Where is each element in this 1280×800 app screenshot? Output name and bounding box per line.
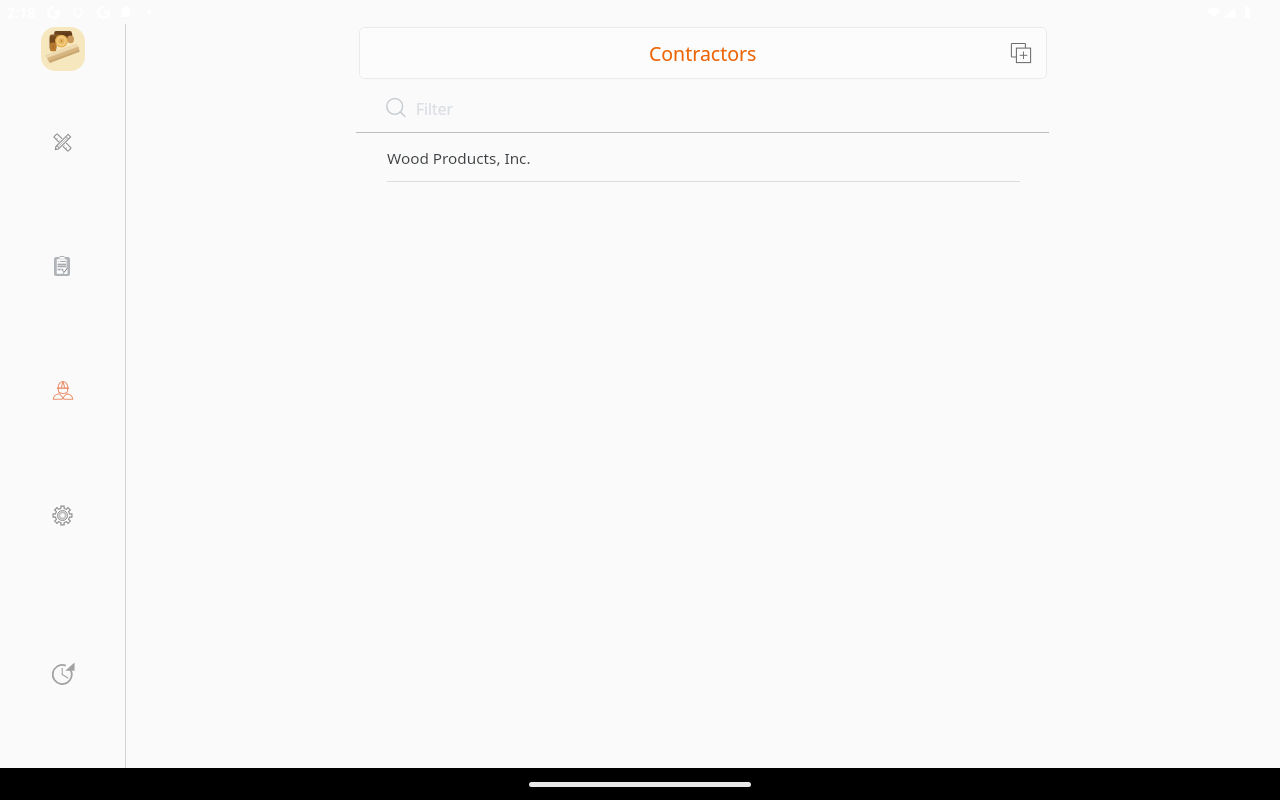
- button[interactable]: App logo: [41, 27, 85, 71]
- staticText: Wood Products, Inc.: [387, 148, 531, 169]
- button[interactable]: Settings: [38, 491, 86, 539]
- button[interactable]: Jobs: [38, 242, 86, 290]
- button[interactable]: Wood Products, Inc.: [356, 133, 1049, 182]
- button[interactable]: Contractors: [39, 366, 87, 414]
- button[interactable]: Add contractor: [1005, 37, 1037, 69]
- staticText: Filter: [416, 98, 453, 119]
- staticText: Contractors: [649, 40, 757, 67]
- button[interactable]: Design: [38, 118, 86, 166]
- button[interactable]: History: [39, 649, 87, 697]
